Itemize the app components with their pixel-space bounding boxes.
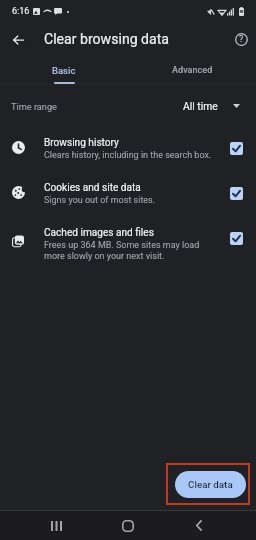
button[interactable]: Basic xyxy=(0,56,128,85)
staticText: Advanced xyxy=(172,65,213,76)
staticText: Signs you out of most sites. xyxy=(44,195,156,206)
staticText: Clear browsing data xyxy=(44,31,169,48)
button[interactable]: Browsing history xyxy=(0,132,256,177)
button[interactable]: Time range xyxy=(0,91,256,121)
staticText: All time xyxy=(183,100,218,112)
button[interactable]: Help and feedback xyxy=(228,26,254,52)
button[interactable]: Back xyxy=(173,511,225,540)
staticText: Cached images and files xyxy=(44,227,154,239)
staticText: Cookies and site data xyxy=(44,182,141,194)
staticText: Time range xyxy=(11,101,57,112)
button[interactable]: Cookies and site data xyxy=(0,177,256,222)
button[interactable]: Cached images and files xyxy=(0,222,256,267)
staticText: ? xyxy=(239,34,244,45)
staticText: Browsing history xyxy=(44,137,119,149)
staticText: Frees up 364 MB. Some sites may load mor… xyxy=(44,240,200,262)
staticText: Clears history, including in the search … xyxy=(44,150,212,161)
staticText: Basic xyxy=(52,65,76,76)
staticText: Clear data xyxy=(188,479,233,490)
button[interactable]: Recent apps xyxy=(30,511,82,540)
staticText: 6:16 xyxy=(12,6,30,17)
button[interactable]: Advanced xyxy=(128,56,256,85)
button[interactable]: Clear data xyxy=(175,471,246,498)
button[interactable]: Navigate up xyxy=(5,26,32,53)
button[interactable]: Home xyxy=(102,511,154,540)
